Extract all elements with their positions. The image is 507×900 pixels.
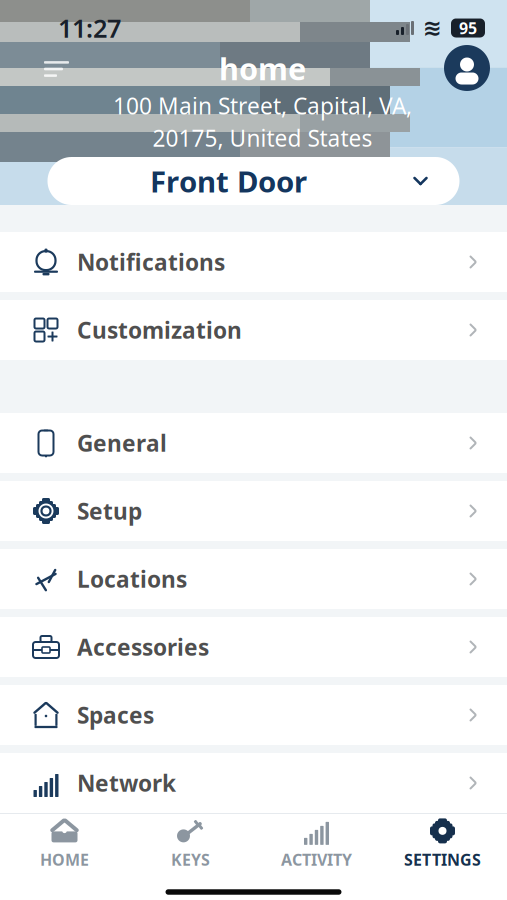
button[interactable]: Accessories (0, 617, 507, 677)
button[interactable]: Customization (0, 300, 507, 360)
staticText: HOME (40, 849, 89, 870)
staticText: SETTINGS (404, 849, 481, 870)
button[interactable]: Menu (44, 52, 84, 86)
button[interactable]: Network (0, 753, 507, 813)
staticText: Network (77, 768, 176, 798)
staticText: ≋ (423, 15, 442, 41)
staticText: Setup (77, 496, 142, 526)
button[interactable]: KEYS (127, 815, 253, 873)
button[interactable]: HOME (1, 815, 127, 873)
staticText: Front Door (150, 161, 307, 200)
button[interactable]: SETTINGS (379, 815, 505, 873)
staticText: Customization (77, 315, 242, 345)
staticText: 20175, United States (152, 123, 372, 153)
staticText: General (77, 428, 167, 458)
button[interactable]: Setup (0, 481, 507, 541)
button[interactable]: Profile (441, 42, 493, 94)
button[interactable]: General (0, 413, 507, 473)
button[interactable]: ACTIVITY (253, 815, 379, 873)
staticText: KEYS (171, 849, 210, 870)
staticText: 100 Main Street, Capital, VA, (113, 91, 412, 121)
button[interactable]: Locations (0, 549, 507, 609)
staticText: Accessories (77, 632, 209, 662)
staticText: 95 (459, 17, 477, 39)
staticText: ACTIVITY (281, 849, 352, 870)
button[interactable]: Notifications (0, 232, 507, 292)
button[interactable]: Spaces (0, 685, 507, 745)
staticText: Locations (77, 564, 187, 594)
staticText: Notifications (77, 247, 225, 277)
staticText: Spaces (77, 700, 154, 730)
staticText: home (219, 48, 306, 89)
button[interactable]: Front Door (47, 157, 459, 205)
staticText: 11:27 (58, 11, 121, 45)
